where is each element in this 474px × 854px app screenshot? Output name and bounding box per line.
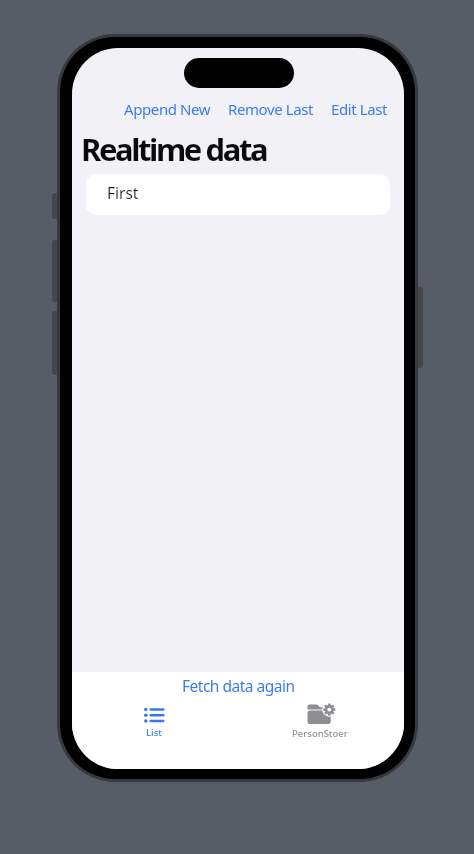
button[interactable]: Fetch data again [182,675,295,696]
button[interactable]: Remove Last [228,99,314,119]
staticText: Remove Last [228,99,314,119]
staticText: List [146,726,162,739]
button[interactable]: Append New [124,99,211,119]
staticText: First [107,182,139,203]
button[interactable]: PersonStoer [270,704,370,740]
staticText: Append New [124,99,211,119]
staticText: Fetch data again [182,675,295,696]
button[interactable]: Edit Last [331,99,388,119]
button[interactable]: List [104,707,204,739]
staticText: Realtime data [81,128,267,170]
staticText: Edit Last [331,99,388,119]
staticText: PersonStoer [292,727,348,740]
button[interactable]: First [86,174,390,215]
